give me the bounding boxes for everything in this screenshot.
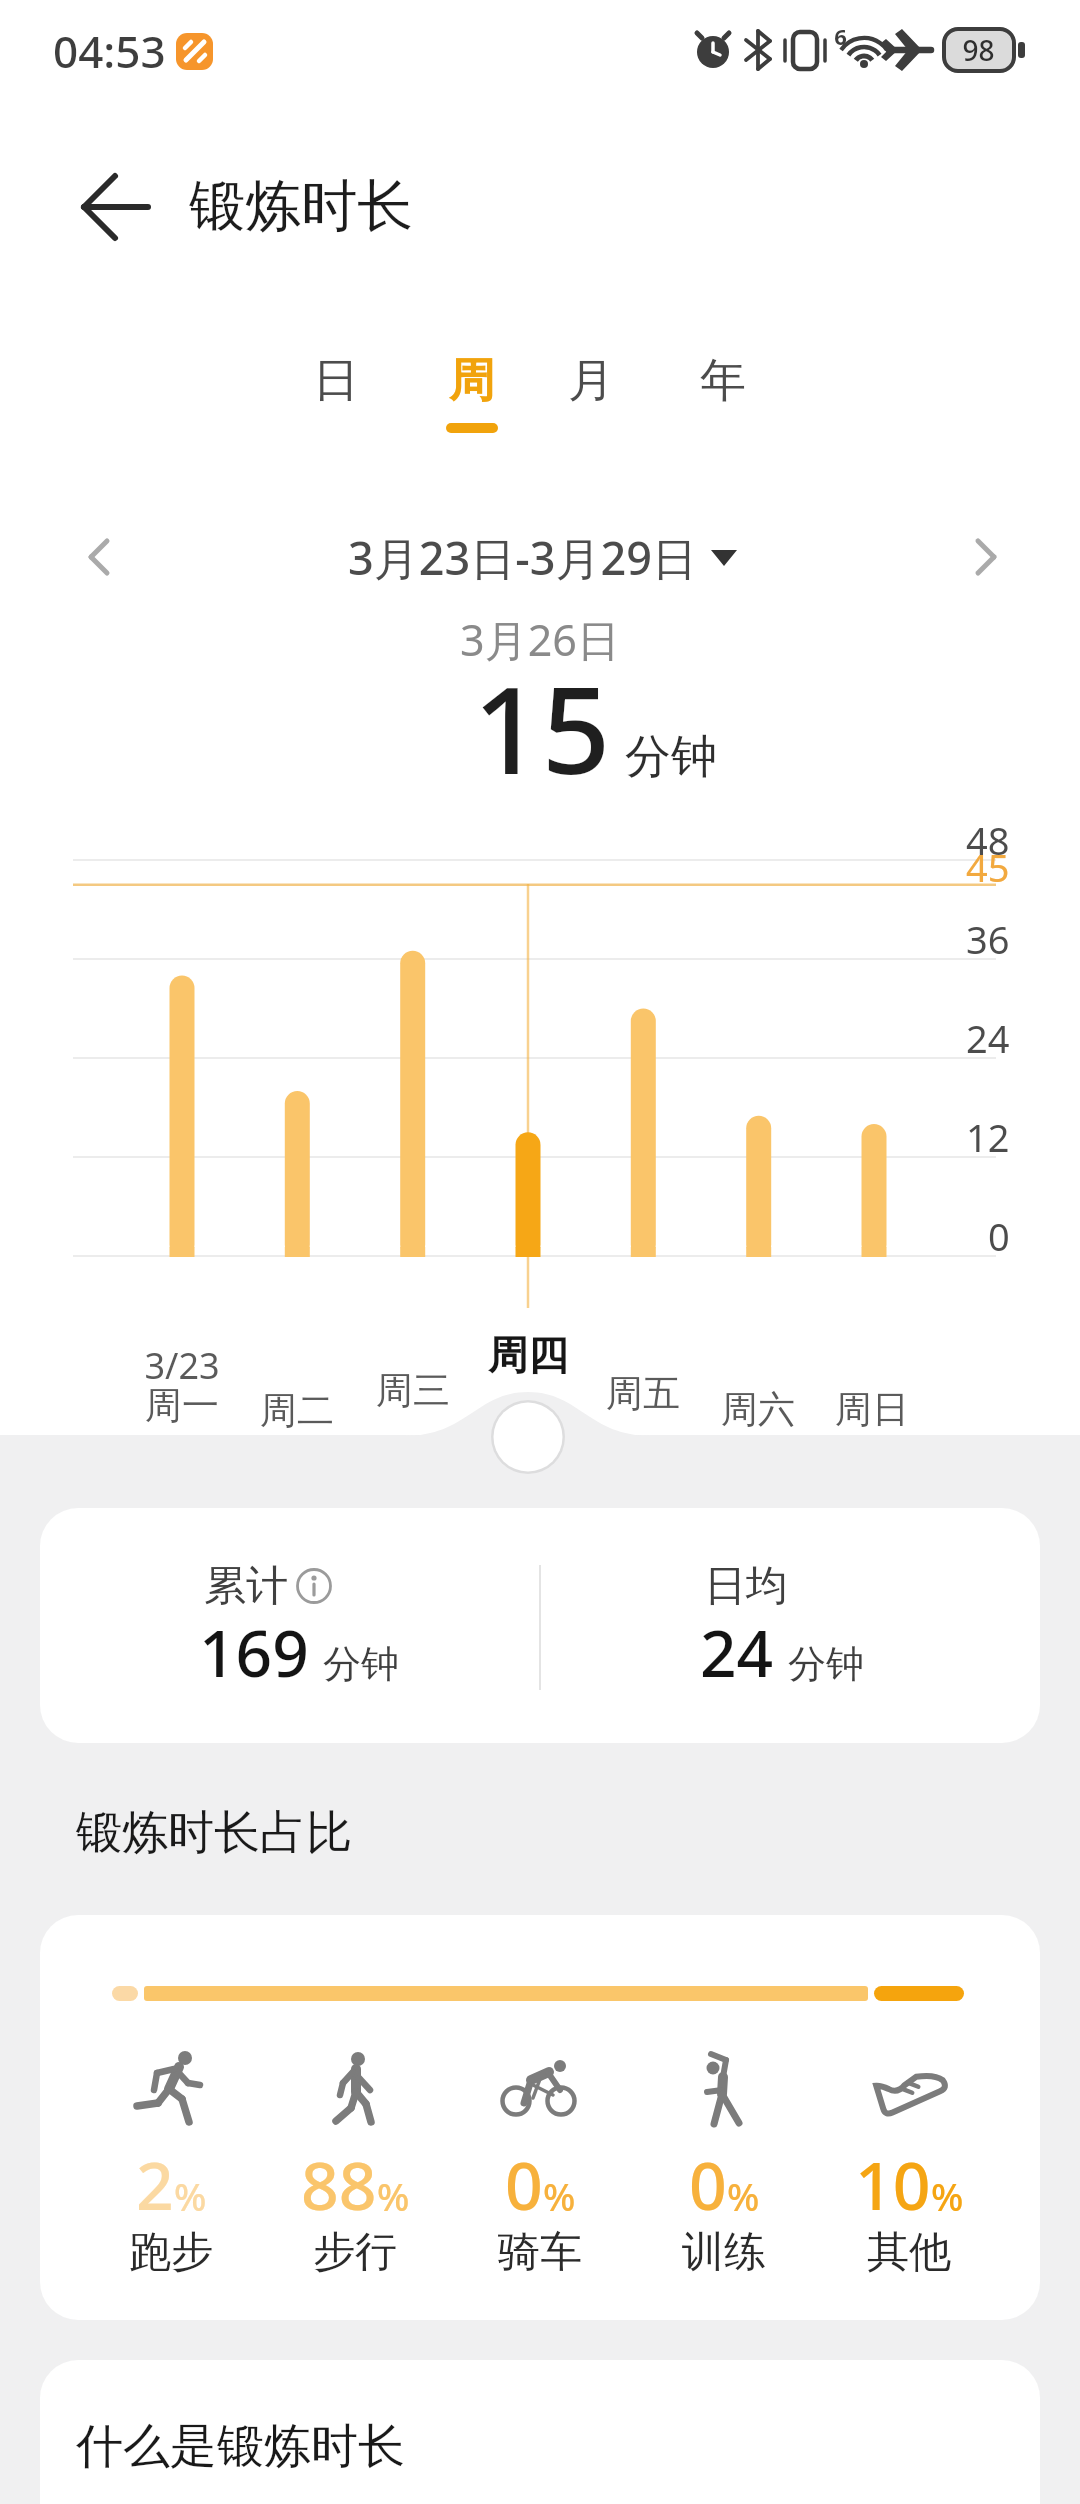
staticText: 周日 — [835, 1386, 909, 1433]
staticText: 分钟 — [625, 728, 717, 786]
staticText: 0 — [689, 2139, 727, 2229]
staticText: 其他 — [867, 2226, 951, 2279]
staticText: 3月23日-3月29日 — [348, 527, 697, 588]
staticText: 6 — [834, 21, 847, 51]
staticText: 步行 — [313, 2226, 397, 2279]
button[interactable] — [50, 510, 150, 605]
staticText: 45 — [966, 841, 1010, 893]
button[interactable] — [494, 1403, 562, 1471]
staticText: % — [377, 2170, 410, 2222]
staticText: % — [931, 2170, 964, 2222]
button[interactable] — [340, 515, 740, 600]
staticText: 88 — [301, 2139, 377, 2229]
staticText: 10 — [855, 2139, 931, 2229]
staticText: 3月26日 — [460, 610, 620, 669]
staticText: 周五 — [606, 1370, 680, 1417]
staticText: 0 — [988, 1210, 1010, 1262]
button[interactable] — [40, 2360, 1040, 2504]
button[interactable] — [40, 1915, 1040, 2320]
staticText: 什么是锻炼时长 — [76, 2417, 405, 2476]
staticText: 月 — [568, 352, 614, 410]
staticText: 周二 — [260, 1387, 334, 1434]
staticText: 年 — [700, 352, 746, 410]
button[interactable] — [422, 331, 522, 431]
staticText: 2 — [136, 2139, 174, 2229]
staticText: 骑车 — [498, 2226, 582, 2279]
staticText: 锻炼时长 — [189, 171, 413, 242]
staticText: 48 — [966, 814, 1010, 866]
staticText: 周四 — [488, 1330, 568, 1380]
staticText: 日均 — [704, 1560, 788, 1613]
staticText: 累计 — [204, 1560, 288, 1613]
button[interactable] — [60, 165, 150, 250]
staticText: 3/23 — [144, 1341, 220, 1390]
staticText: 周 — [449, 352, 495, 410]
button[interactable] — [286, 331, 386, 431]
staticText: 24 — [700, 1609, 774, 1696]
button[interactable] — [673, 331, 773, 431]
staticText: 0 — [505, 2139, 543, 2229]
staticText: % — [543, 2170, 576, 2222]
staticText: % — [727, 2170, 760, 2222]
staticText: 98 — [962, 31, 995, 69]
staticText: 周六 — [721, 1386, 795, 1433]
staticText: % — [174, 2170, 207, 2222]
staticText: 锻炼时长占比 — [76, 1804, 352, 1862]
staticText: 分钟 — [788, 1640, 864, 1688]
button[interactable] — [541, 331, 641, 431]
staticText: 分钟 — [323, 1640, 399, 1688]
staticText: 周三 — [376, 1367, 450, 1414]
staticText: 15 — [473, 646, 611, 806]
staticText: 169 — [199, 1609, 309, 1696]
staticText: 24 — [966, 1012, 1010, 1064]
button[interactable] — [40, 1508, 1040, 1743]
staticText: 12 — [966, 1111, 1010, 1163]
staticText: 日 — [313, 352, 359, 410]
button[interactable] — [930, 510, 1030, 605]
staticText: 04:53 — [53, 21, 166, 81]
staticText: 周一 — [145, 1382, 219, 1429]
staticText: 训练 — [682, 2226, 766, 2279]
staticText: 36 — [966, 913, 1010, 965]
staticText: 跑步 — [129, 2226, 213, 2279]
